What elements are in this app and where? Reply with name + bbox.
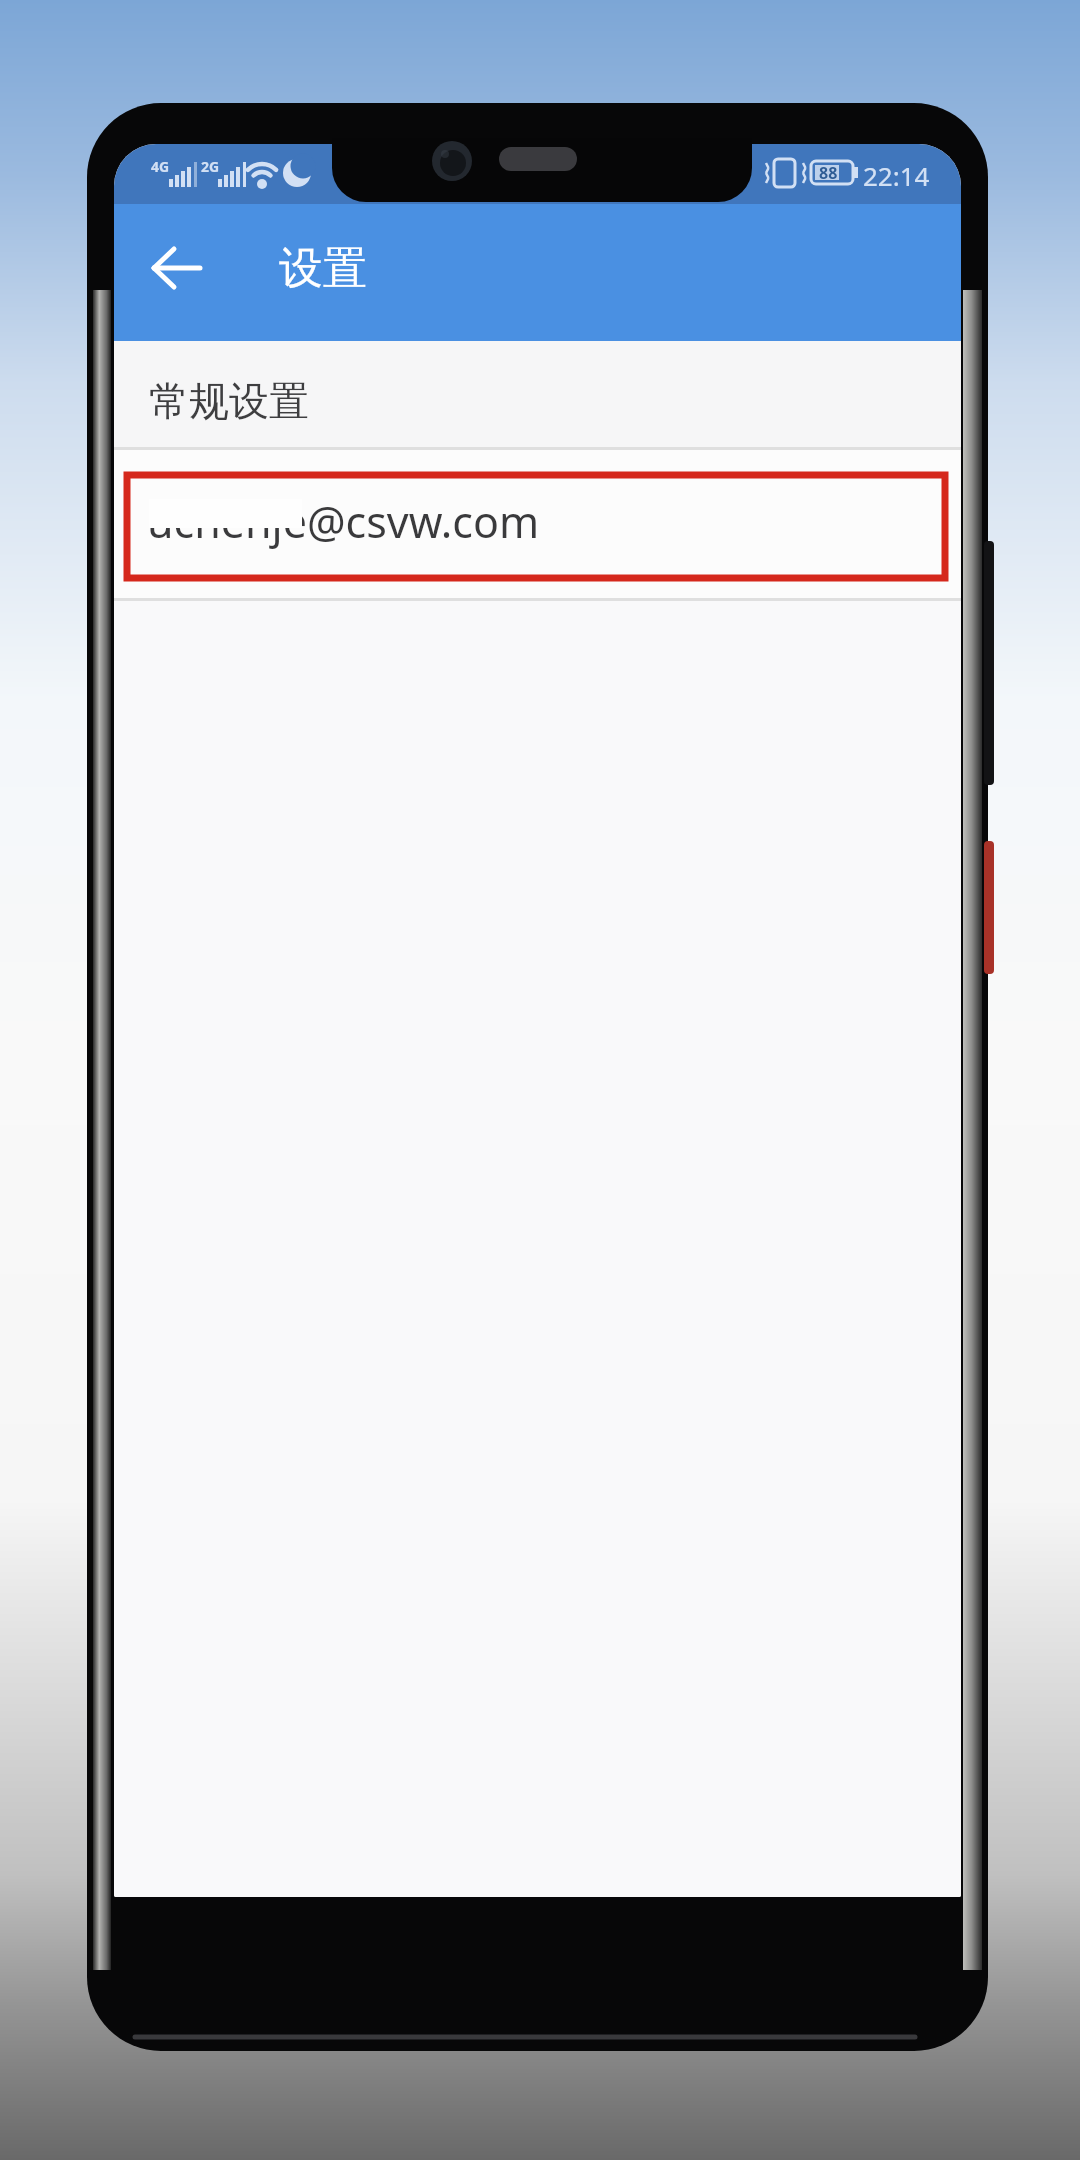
- button[interactable]: [142, 233, 212, 303]
- staticText: 2G: [201, 157, 220, 176]
- staticText: 88: [819, 162, 838, 184]
- staticText: uchenje@csvw.com: [147, 492, 540, 551]
- staticText: 常规设置: [149, 376, 309, 426]
- staticText: 4G: [151, 157, 170, 176]
- staticText: 设置: [279, 241, 367, 296]
- button[interactable]: uchenje@csvw.com: [114, 450, 961, 598]
- staticText: 22:14: [863, 158, 930, 193]
